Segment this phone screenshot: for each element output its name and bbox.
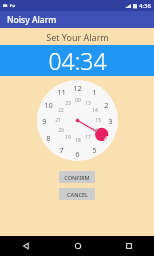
button[interactable]: Back [0,236,52,256]
button[interactable]: CONFIRM [59,171,95,183]
button[interactable]: Clock time picker, 4:34 [37,80,118,161]
staticText: 2 [104,100,109,110]
staticText: 4 [104,133,109,143]
staticText: Noisy Alarm [7,14,57,26]
staticText: 23 [65,100,71,107]
staticText: 12 [73,83,82,93]
staticText: CANCEL [67,191,88,198]
staticText: 11 [57,87,66,97]
staticText: 7 [59,145,64,155]
staticText: 14 [92,107,98,114]
staticText: 9 [42,116,47,126]
staticText: 13 [85,100,91,107]
button[interactable]: CANCEL [59,188,95,200]
staticText: 10 [44,100,53,110]
staticText: 4:36 [139,2,151,10]
staticText: 16 [92,127,98,134]
staticText: 04:34 [48,45,107,76]
staticText: 22 [58,107,64,114]
staticText: 17 [85,134,91,141]
button[interactable]: Recent apps [103,236,154,256]
staticText: 21 [55,117,61,124]
staticText: 3 [108,116,113,126]
staticText: 1 [92,87,97,97]
staticText: 8 [46,133,51,143]
staticText: 5 [92,145,97,155]
staticText: 00 [75,97,81,104]
staticText: 6 [75,149,80,159]
staticText: CONFIRM [64,174,90,181]
staticText: 18 [75,137,81,144]
button[interactable]: 04:34 [0,45,154,76]
staticText: 19 [65,134,71,141]
staticText: 20 [58,127,64,134]
staticText: 15 [95,117,101,124]
staticText: Set Your Alarm [46,31,109,43]
button[interactable]: Home [52,236,103,256]
